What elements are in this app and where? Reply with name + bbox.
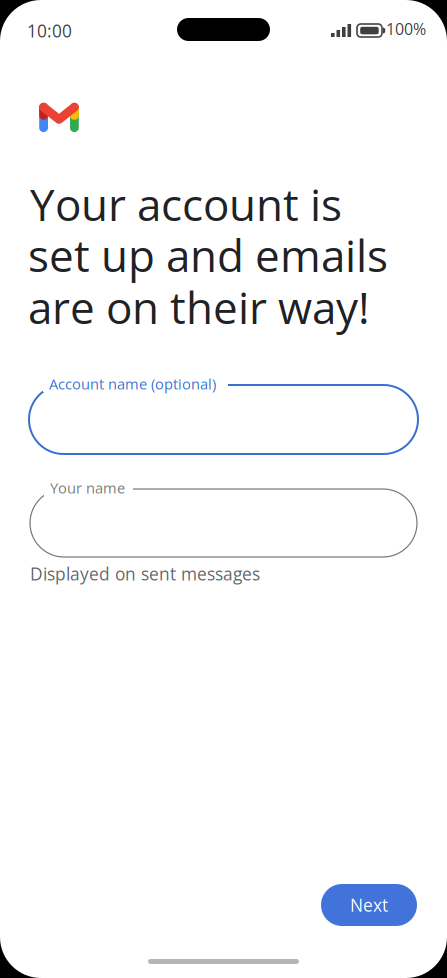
staticText: Your account is (30, 174, 342, 234)
staticText: Next (350, 893, 388, 917)
staticText: Your name (50, 478, 125, 498)
button[interactable]: Your name (30, 489, 417, 557)
staticText: are on their way! (28, 277, 370, 337)
button[interactable]: Next (321, 884, 417, 926)
button[interactable]: Account name (optional) (29, 385, 418, 454)
staticText: Displayed on sent messages (30, 562, 260, 586)
staticText: Account name (optional) (49, 374, 216, 394)
staticText: 10:00 (27, 19, 72, 43)
staticText: 100% (386, 18, 426, 40)
staticText: set up and emails (28, 225, 388, 285)
